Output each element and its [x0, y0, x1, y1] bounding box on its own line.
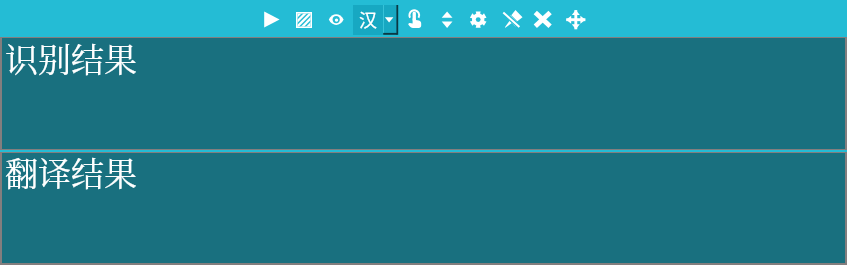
button[interactable]: Language	[353, 5, 383, 35]
button[interactable]: Move	[562, 6, 588, 32]
button[interactable]: Click through	[404, 6, 428, 32]
staticText: 汉	[359, 6, 377, 32]
staticText: 翻译结果	[5, 148, 137, 195]
button[interactable]: Select region	[292, 6, 316, 32]
button[interactable]: Close	[530, 6, 556, 32]
button[interactable]: 识别结果	[2, 38, 845, 149]
button[interactable]: Language menu	[383, 5, 399, 36]
button[interactable]: Play	[260, 6, 284, 32]
staticText: 识别结果	[5, 34, 137, 81]
button[interactable]: 翻译结果	[2, 153, 845, 263]
button[interactable]: Unpin	[499, 6, 525, 32]
button[interactable]: Settings	[466, 6, 492, 32]
button[interactable]: Preview	[325, 6, 349, 32]
button[interactable]: Resize	[437, 6, 459, 32]
